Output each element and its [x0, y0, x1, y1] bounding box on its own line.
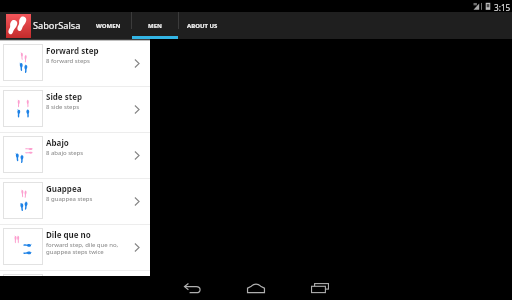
staticText: 8 forward steps	[46, 57, 90, 65]
staticText: Enchufla	[46, 275, 81, 282]
button[interactable]: WOMEN	[85, 12, 131, 39]
button[interactable]: Dile que no	[0, 225, 150, 271]
staticText: 8 abajo steps	[46, 149, 84, 157]
button[interactable]: MEN	[132, 12, 178, 39]
staticText: MEN	[148, 22, 162, 30]
button[interactable]: ABOUT US	[179, 12, 225, 39]
staticText: WOMEN	[96, 22, 121, 30]
button[interactable]: Forward step	[0, 41, 150, 87]
button[interactable]: SaborSalsa home	[6, 14, 31, 38]
staticText: SaborSalsa	[33, 19, 81, 32]
button[interactable]: Back	[178, 276, 206, 300]
staticText: forward step, dile que no, guappea steps…	[46, 241, 119, 256]
staticText: ABOUT US	[187, 22, 218, 30]
button[interactable]: Enchufla	[0, 271, 150, 278]
staticText: Abajo	[46, 137, 69, 148]
button[interactable]: Recent apps	[306, 276, 334, 300]
button[interactable]: Side step	[0, 87, 150, 133]
staticText: Side step	[46, 91, 83, 102]
staticText: Guappea	[46, 183, 82, 194]
button[interactable]: Home	[242, 276, 270, 300]
staticText: Forward step	[46, 45, 99, 56]
staticText: Dile que no	[46, 229, 91, 240]
staticText: 3:15	[494, 2, 511, 13]
staticText: 8 side steps	[46, 103, 80, 111]
button[interactable]: Guappea	[0, 179, 150, 225]
button[interactable]: Abajo	[0, 133, 150, 179]
staticText: 8 guappea steps	[46, 195, 93, 203]
